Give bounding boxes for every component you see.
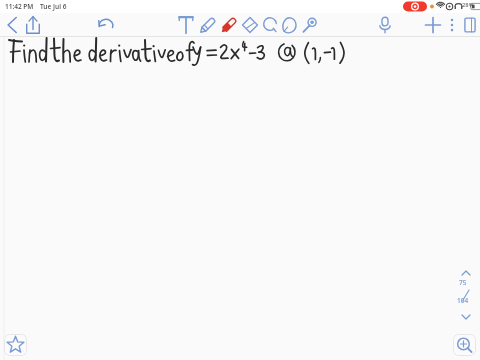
staticText: 28% — [462, 1, 474, 9]
button[interactable]: Shape tool — [280, 15, 300, 35]
button[interactable]: Back — [2, 15, 22, 35]
staticText: 75 — [459, 278, 467, 287]
button[interactable]: Text tool — [176, 15, 196, 35]
button[interactable]: Zoom in — [453, 334, 476, 356]
button[interactable]: Share — [23, 15, 43, 35]
button[interactable]: Add page — [423, 15, 443, 35]
button[interactable]: Lasso select — [260, 15, 280, 35]
button[interactable]: Page 75 of 104 — [455, 268, 477, 322]
staticText: Tue Jul 6 — [40, 2, 67, 11]
button[interactable]: Record audio — [375, 15, 395, 35]
staticText: 11:42 PM — [5, 2, 34, 11]
button[interactable]: Pen — [198, 15, 218, 35]
button[interactable]: Bookmark page — [4, 334, 27, 356]
button[interactable]: Page view — [460, 15, 480, 35]
button[interactable]: Undo — [96, 15, 116, 35]
staticText: 104 — [457, 296, 469, 305]
button[interactable]: More options — [442, 15, 462, 35]
button[interactable]: Highlighter — [219, 15, 239, 35]
button[interactable]: Laser pointer — [300, 15, 320, 35]
button[interactable]: Eraser — [240, 15, 260, 35]
